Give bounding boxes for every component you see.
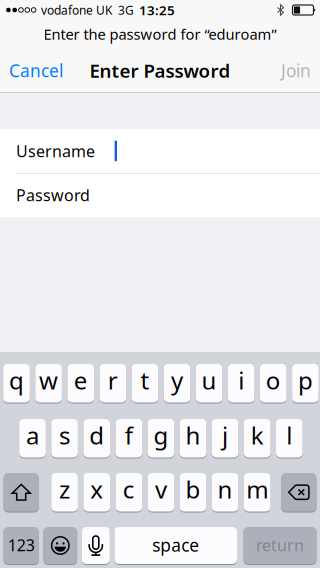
staticText: h	[185, 419, 200, 451]
staticText: r	[108, 364, 118, 396]
staticText: k	[251, 419, 264, 451]
staticText: i	[238, 364, 244, 396]
button[interactable]: y	[164, 363, 190, 403]
staticText: 3G	[118, 2, 134, 18]
button[interactable]: p	[292, 363, 319, 403]
staticText: a	[26, 419, 39, 451]
button[interactable]: t	[132, 363, 158, 403]
staticText: c	[123, 473, 135, 505]
button[interactable]: x	[83, 472, 110, 512]
button[interactable]: w	[35, 363, 62, 403]
staticText: s	[59, 419, 70, 451]
staticText: Enter Password	[89, 58, 230, 83]
button[interactable]: f	[115, 418, 142, 458]
staticText: space	[152, 533, 199, 556]
staticText: vodafone UK	[41, 2, 112, 18]
staticText: t	[140, 364, 149, 396]
staticText: x	[90, 473, 103, 505]
staticText: Cancel	[9, 59, 63, 82]
button[interactable]: e	[67, 363, 94, 403]
button[interactable]: h	[180, 418, 206, 458]
staticText: v	[155, 473, 167, 505]
staticText: f	[125, 419, 133, 451]
button[interactable]: Join	[251, 48, 311, 93]
staticText: Password	[16, 184, 90, 206]
staticText: m	[246, 473, 268, 505]
staticText: q	[9, 364, 24, 396]
staticText: b	[185, 473, 200, 505]
staticText: Username	[16, 140, 95, 162]
button[interactable]: z	[51, 472, 78, 512]
staticText: o	[266, 364, 281, 396]
button[interactable]: b	[180, 472, 206, 512]
staticText: Join	[281, 59, 311, 82]
staticText: j	[222, 419, 228, 451]
staticText: p	[298, 364, 313, 396]
button[interactable]: q	[3, 363, 30, 403]
staticText: e	[74, 364, 88, 396]
button[interactable]: Dictation	[82, 526, 110, 564]
staticText: z	[59, 473, 70, 505]
button[interactable]: g	[148, 418, 174, 458]
button[interactable]: Emoji	[43, 526, 77, 564]
button[interactable]: m	[244, 472, 270, 512]
staticText: y	[171, 364, 183, 396]
staticText: l	[286, 419, 292, 451]
staticText: u	[202, 364, 217, 396]
button[interactable]: l	[276, 418, 303, 458]
button[interactable]: j	[212, 418, 238, 458]
button[interactable]: Delete	[281, 472, 316, 512]
button[interactable]: u	[196, 363, 222, 403]
button[interactable]: n	[212, 472, 238, 512]
button[interactable]: a	[19, 418, 46, 458]
staticText: w	[39, 364, 58, 396]
button[interactable]: Shift	[4, 472, 39, 512]
button[interactable]: r	[99, 363, 126, 403]
staticText: Enter the password for “eduroam”	[43, 24, 276, 44]
button[interactable]: Cancel	[9, 48, 79, 93]
button[interactable]: 123	[4, 526, 39, 564]
staticText: d	[89, 419, 104, 451]
staticText: g	[153, 419, 168, 451]
button[interactable]: s	[51, 418, 78, 458]
button[interactable]: o	[260, 363, 287, 403]
button[interactable]: v	[148, 472, 174, 512]
button[interactable]: space	[114, 526, 237, 564]
button[interactable]: d	[83, 418, 110, 458]
button[interactable]: i	[228, 363, 254, 403]
staticText: return	[256, 534, 304, 556]
button[interactable]: k	[244, 418, 270, 458]
staticText: n	[218, 473, 233, 505]
button[interactable]: return	[244, 526, 316, 564]
button[interactable]: c	[115, 472, 142, 512]
staticText: 13:25	[139, 1, 175, 19]
staticText: 123	[8, 534, 35, 556]
